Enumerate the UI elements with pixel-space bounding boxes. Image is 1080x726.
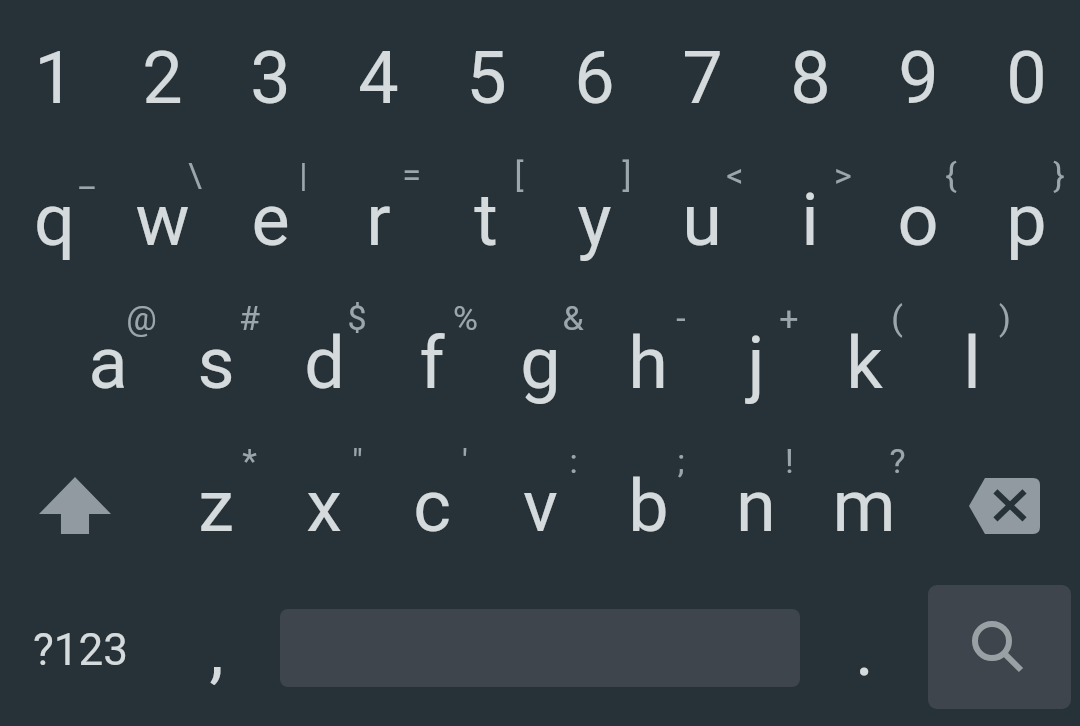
staticText: u [682,178,722,262]
button[interactable]: m [810,438,918,580]
staticText: 3 [250,36,291,120]
staticText: 8 [790,36,831,120]
staticText: o [897,178,939,262]
staticText: * [242,441,257,481]
staticText: 7 [682,36,723,120]
button[interactable]: r [324,152,432,294]
staticText: e [251,178,290,262]
button[interactable]: p [972,152,1080,294]
staticText: ? [889,441,906,481]
button[interactable]: b [594,438,702,580]
staticText: c [413,464,451,548]
staticText: a [88,321,128,405]
staticText: = [402,155,421,195]
button[interactable]: 0 [972,9,1080,152]
button[interactable]: s [162,294,270,438]
staticText: z [198,464,234,548]
staticText: ! [785,441,794,481]
button[interactable]: c [378,438,486,580]
staticText: ] [622,155,632,195]
button[interactable]: 1 [0,9,108,152]
staticText: m [832,464,896,548]
staticText: l [963,321,981,405]
staticText: : [569,441,578,481]
staticText: ( [891,298,903,338]
staticText: ?123 [33,624,128,676]
staticText: s [197,321,235,405]
staticText: . [855,608,874,692]
button[interactable]: Search [928,585,1071,709]
button[interactable]: t [432,152,540,294]
staticText: t [474,178,498,262]
button[interactable]: n [702,438,810,580]
staticText: f [419,321,445,405]
staticText: w [135,178,190,262]
button[interactable]: k [810,294,918,438]
staticText: h [628,321,668,405]
button[interactable]: . [808,580,920,726]
button[interactable]: w [108,152,216,294]
button[interactable]: , [160,580,272,726]
button[interactable]: g [486,294,594,438]
button[interactable]: h [594,294,702,438]
staticText: j [747,321,765,405]
button[interactable]: u [648,152,756,294]
staticText: i [801,178,819,262]
staticText: 1 [34,36,75,120]
button[interactable]: ?123 [0,580,160,726]
button[interactable]: z [162,438,270,580]
button[interactable]: q [0,152,108,294]
button[interactable]: o [864,152,972,294]
staticText: [ [514,155,524,195]
staticText: " [352,441,363,481]
button[interactable]: Backspace [918,438,1080,580]
staticText: _ [79,155,95,195]
staticText: $ [347,298,367,338]
staticText: b [628,464,669,548]
button[interactable]: f [378,294,486,438]
staticText: { [945,155,957,195]
button[interactable]: 4 [324,9,432,152]
staticText: ) [999,298,1011,338]
staticText: \ [188,155,202,195]
button[interactable]: v [486,438,594,580]
staticText: d [304,321,345,405]
button[interactable]: a [54,294,162,438]
staticText: 9 [898,36,939,120]
staticText: n [736,464,776,548]
button[interactable]: 5 [432,9,540,152]
button[interactable]: j [702,294,810,438]
button[interactable]: Shift [0,438,162,580]
button[interactable]: 3 [216,9,324,152]
staticText: y [577,178,612,262]
button[interactable]: i [756,152,864,294]
button[interactable]: 9 [864,9,972,152]
button[interactable]: d [270,294,378,438]
staticText: | [299,155,308,195]
button[interactable]: y [540,152,648,294]
staticText: & [562,298,584,338]
button[interactable]: l [918,294,1026,438]
staticText: # [239,298,260,338]
staticText: > [834,155,852,195]
staticText: 6 [574,36,615,120]
staticText: v [523,464,558,548]
button[interactable]: 8 [756,9,864,152]
staticText: g [520,321,561,405]
staticText: } [1053,155,1065,195]
staticText: + [779,298,799,338]
staticText: - [676,298,686,338]
button[interactable]: e [216,152,324,294]
staticText: p [1006,178,1047,262]
staticText: 2 [142,36,183,120]
button[interactable]: 7 [648,9,756,152]
staticText: x [306,464,342,548]
staticText: 5 [466,36,507,120]
button[interactable]: 6 [540,9,648,152]
staticText: % [453,298,478,338]
staticText: 4 [358,36,399,120]
staticText: 0 [1006,36,1047,120]
button[interactable]: x [270,438,378,580]
button[interactable]: 2 [108,9,216,152]
